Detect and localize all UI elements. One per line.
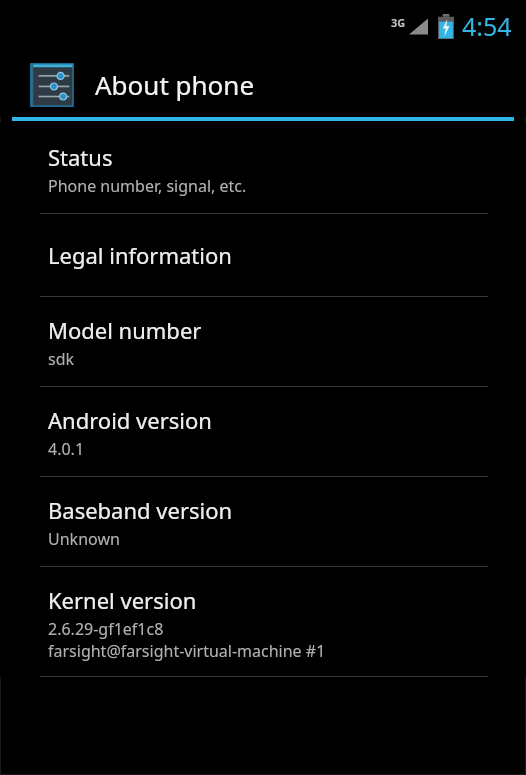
staticText: Baseband version xyxy=(48,495,233,525)
staticText: 3G xyxy=(391,15,406,30)
staticText: farsight@farsight-virtual-machine #1 xyxy=(48,640,326,662)
staticText: Android version xyxy=(48,405,212,435)
button[interactable]: Status xyxy=(0,122,526,213)
staticText: 2.6.29-gf1ef1c8 xyxy=(48,618,164,640)
staticText: 4:54 xyxy=(462,9,512,43)
staticText: Kernel version xyxy=(48,585,197,615)
staticText: Legal information xyxy=(48,240,232,270)
button[interactable]: Model number xyxy=(0,297,526,386)
staticText: Status xyxy=(48,142,113,172)
staticText: Model number xyxy=(48,315,202,345)
button[interactable]: Kernel version xyxy=(0,567,526,676)
button[interactable]: Android version xyxy=(0,387,526,476)
button[interactable]: Legal information xyxy=(0,214,526,296)
other: Settings xyxy=(28,61,76,109)
staticText: sdk xyxy=(48,348,75,370)
staticText: Unknown xyxy=(48,528,120,550)
staticText: 4.0.1 xyxy=(48,438,85,460)
button[interactable]: Baseband version xyxy=(0,477,526,566)
staticText: Phone number, signal, etc. xyxy=(48,175,247,197)
button[interactable]: Settings xyxy=(0,52,526,117)
staticText: About phone xyxy=(95,67,255,102)
